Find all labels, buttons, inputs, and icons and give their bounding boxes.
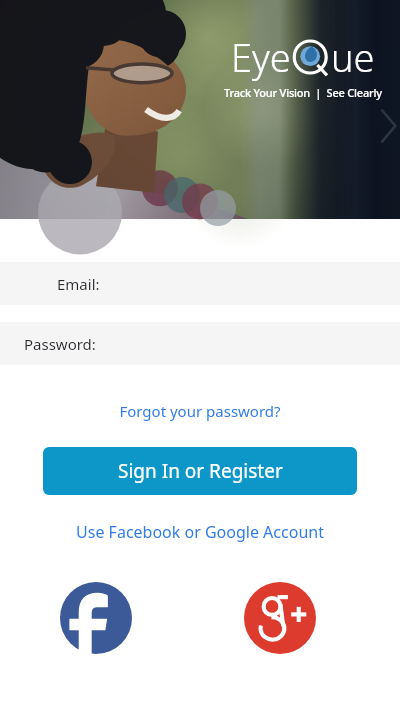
button[interactable]: Email: [0,262,400,305]
button[interactable]: Sign in with Google Plus [244,582,316,654]
staticText: ue [331,31,375,83]
staticText: Use Facebook or Google Account [76,521,324,543]
button[interactable]: Password: [0,322,400,365]
staticText: Eye [231,31,291,83]
button[interactable]: Forgot your password? [0,401,400,421]
staticText: Track Your Vision | See Clearly [224,85,382,100]
button[interactable]: Sign In or Register [43,447,357,495]
staticText: Email: [57,274,100,294]
staticText: Forgot your password? [119,401,281,421]
staticText: Sign In or Register [118,458,283,484]
button[interactable]: Use Facebook or Google Account [0,521,400,543]
button[interactable]: Sign in with Facebook [60,582,132,654]
staticText: Password: [24,334,96,354]
